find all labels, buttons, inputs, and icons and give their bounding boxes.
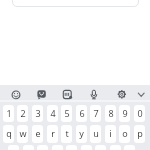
button[interactable] bbox=[35, 88, 49, 102]
button[interactable]: 9 bbox=[119, 105, 130, 122]
staticText: 8 bbox=[108, 107, 114, 119]
button[interactable]: 5 bbox=[61, 105, 72, 122]
staticText: i bbox=[109, 127, 112, 139]
staticText: 0 bbox=[137, 107, 143, 119]
button[interactable]: 1 bbox=[3, 105, 14, 122]
button[interactable] bbox=[110, 145, 121, 150]
button[interactable] bbox=[12, 0, 139, 7]
button[interactable]: 0 bbox=[134, 105, 145, 122]
button[interactable]: i bbox=[105, 125, 116, 143]
button[interactable]: 3 bbox=[32, 105, 43, 122]
staticText: 3 bbox=[35, 107, 41, 119]
button[interactable] bbox=[66, 145, 77, 150]
button[interactable]: 6 bbox=[76, 105, 87, 122]
button[interactable]: 2 bbox=[17, 105, 28, 122]
staticText: p bbox=[137, 127, 143, 139]
button[interactable] bbox=[37, 145, 48, 150]
button[interactable] bbox=[134, 88, 148, 102]
staticText: e bbox=[35, 127, 41, 139]
staticText: r bbox=[51, 127, 55, 139]
button[interactable]: y bbox=[76, 125, 87, 143]
button[interactable] bbox=[115, 88, 129, 102]
button[interactable] bbox=[9, 88, 23, 102]
button[interactable] bbox=[23, 145, 34, 150]
button[interactable] bbox=[81, 145, 92, 150]
button[interactable]: r bbox=[47, 125, 58, 143]
button[interactable]: p bbox=[134, 125, 145, 143]
button[interactable] bbox=[87, 88, 101, 102]
staticText: 9 bbox=[122, 107, 128, 119]
staticText: q bbox=[6, 127, 12, 139]
button[interactable]: 7 bbox=[90, 105, 101, 122]
staticText: w bbox=[19, 127, 27, 139]
staticText: o bbox=[122, 127, 128, 139]
button[interactable] bbox=[52, 145, 63, 150]
button[interactable]: t bbox=[61, 125, 72, 143]
staticText: 1 bbox=[6, 107, 12, 119]
staticText: t bbox=[65, 127, 69, 139]
staticText: y bbox=[79, 127, 84, 139]
staticText: 7 bbox=[93, 107, 99, 119]
button[interactable] bbox=[95, 145, 106, 150]
button[interactable]: q bbox=[3, 125, 14, 143]
button[interactable]: o bbox=[119, 125, 130, 143]
staticText: 2 bbox=[20, 107, 26, 119]
staticText: 5 bbox=[64, 107, 70, 119]
button[interactable] bbox=[124, 145, 135, 150]
button[interactable] bbox=[8, 145, 19, 150]
staticText: u bbox=[93, 127, 99, 139]
button[interactable]: e bbox=[32, 125, 43, 143]
staticText: 6 bbox=[79, 107, 85, 119]
button[interactable]: 8 bbox=[105, 105, 116, 122]
button[interactable]: w bbox=[17, 125, 28, 143]
button[interactable] bbox=[60, 88, 74, 102]
button[interactable]: u bbox=[90, 125, 101, 143]
staticText: 4 bbox=[50, 107, 56, 119]
button[interactable]: 4 bbox=[47, 105, 58, 122]
